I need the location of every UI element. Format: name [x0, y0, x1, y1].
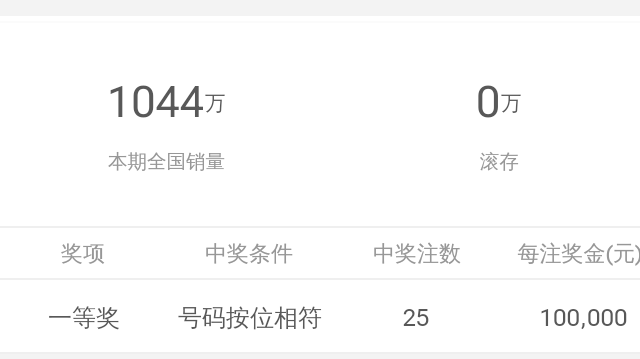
staticText: 万 — [501, 90, 522, 116]
staticText: 中奖注数 — [373, 240, 461, 268]
staticText: 本期全国销量 — [108, 149, 225, 174]
staticText: 1044 — [107, 77, 205, 127]
button[interactable]: 奖项 — [0, 229, 640, 279]
button[interactable]: 0 — [359, 30, 639, 190]
staticText: 0 — [476, 77, 501, 127]
staticText: 100,000 — [539, 304, 628, 332]
staticText: 中奖条件 — [205, 240, 293, 268]
staticText: 奖项 — [61, 240, 105, 268]
button[interactable]: 一等奖 — [0, 282, 640, 354]
staticText: 25 — [402, 304, 430, 332]
button[interactable]: 1044 — [26, 30, 306, 190]
staticText: 号码按位相符 — [178, 303, 322, 333]
staticText: 滚存 — [480, 149, 519, 174]
staticText: 每注奖金(元) — [517, 240, 640, 268]
staticText: 一等奖 — [48, 303, 120, 333]
staticText: 万 — [205, 90, 226, 116]
